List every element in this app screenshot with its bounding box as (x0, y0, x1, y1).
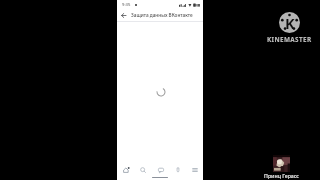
button[interactable]: Back (119, 11, 127, 19)
staticText: Защита данных ВКонтакте (131, 12, 193, 18)
staticText: Принц Герасс (264, 172, 299, 179)
button[interactable]: Clips (169, 163, 186, 177)
button[interactable]: Home (117, 163, 134, 177)
button[interactable]: Menu (186, 163, 203, 177)
staticText: 9:35 (122, 2, 131, 8)
button[interactable]: Search (134, 163, 151, 177)
staticText: K (285, 13, 295, 33)
button[interactable]: Messages (152, 163, 169, 177)
staticText: KINEMASTER (267, 35, 312, 44)
